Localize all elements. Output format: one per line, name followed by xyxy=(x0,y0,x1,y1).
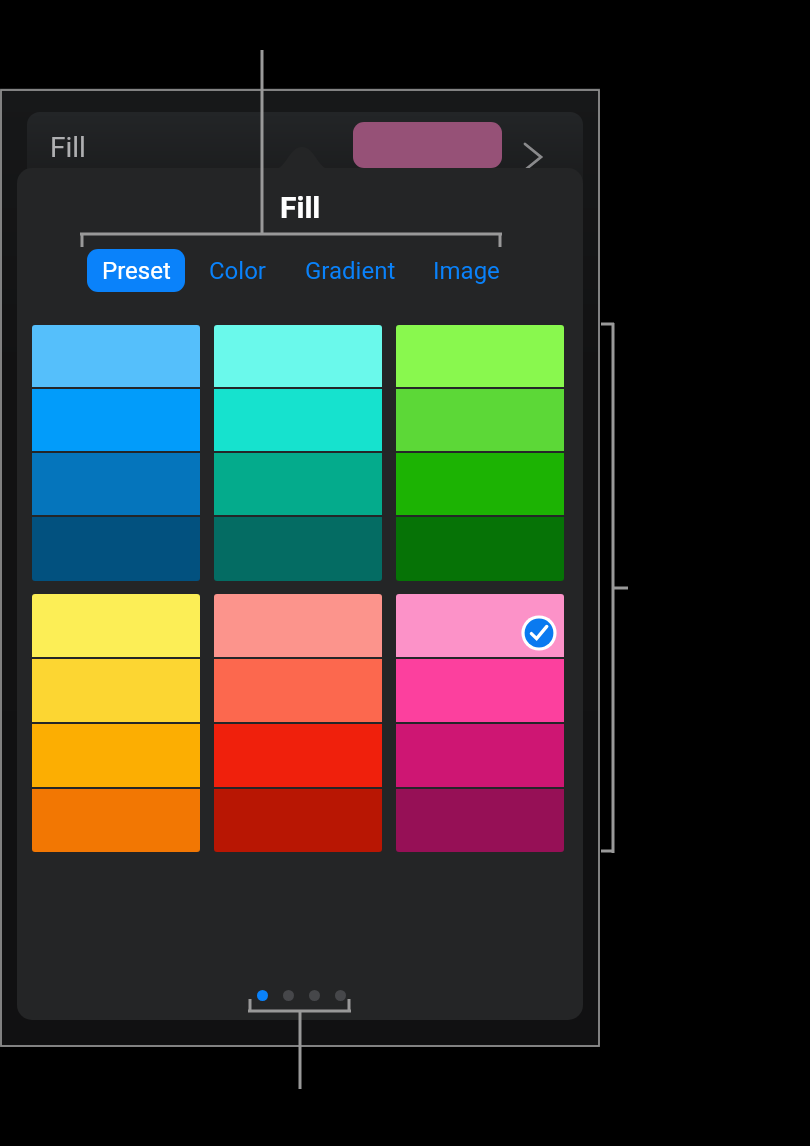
button[interactable] xyxy=(396,325,564,389)
button[interactable] xyxy=(32,389,200,453)
button[interactable] xyxy=(214,724,382,789)
button[interactable] xyxy=(214,594,382,659)
staticText: Preset xyxy=(102,257,171,285)
button[interactable] xyxy=(396,724,564,789)
button[interactable] xyxy=(32,594,200,659)
staticText: Fill xyxy=(50,131,86,164)
button[interactable] xyxy=(214,325,382,389)
button[interactable] xyxy=(396,389,564,453)
button[interactable] xyxy=(214,389,382,453)
button[interactable] xyxy=(257,990,268,1001)
button[interactable] xyxy=(283,990,294,1001)
button[interactable] xyxy=(32,325,200,389)
button[interactable] xyxy=(32,724,200,789)
button[interactable] xyxy=(214,453,382,517)
button[interactable] xyxy=(32,659,200,724)
staticText: Image xyxy=(433,257,500,285)
button[interactable] xyxy=(396,594,564,659)
button[interactable]: Fill xyxy=(27,112,583,190)
button[interactable] xyxy=(396,453,564,517)
button[interactable]: Color xyxy=(195,249,279,292)
staticText: Fill xyxy=(280,190,321,224)
button[interactable]: Preset xyxy=(87,249,185,292)
button[interactable]: Image xyxy=(423,249,509,292)
staticText: Gradient xyxy=(305,257,396,285)
button[interactable]: Open fill options xyxy=(515,136,557,178)
button[interactable] xyxy=(214,659,382,724)
button[interactable] xyxy=(309,990,320,1001)
button[interactable] xyxy=(396,659,564,724)
button[interactable] xyxy=(32,453,200,517)
button[interactable]: Gradient xyxy=(293,249,407,292)
staticText: Color xyxy=(209,257,266,285)
button[interactable] xyxy=(335,990,346,1001)
